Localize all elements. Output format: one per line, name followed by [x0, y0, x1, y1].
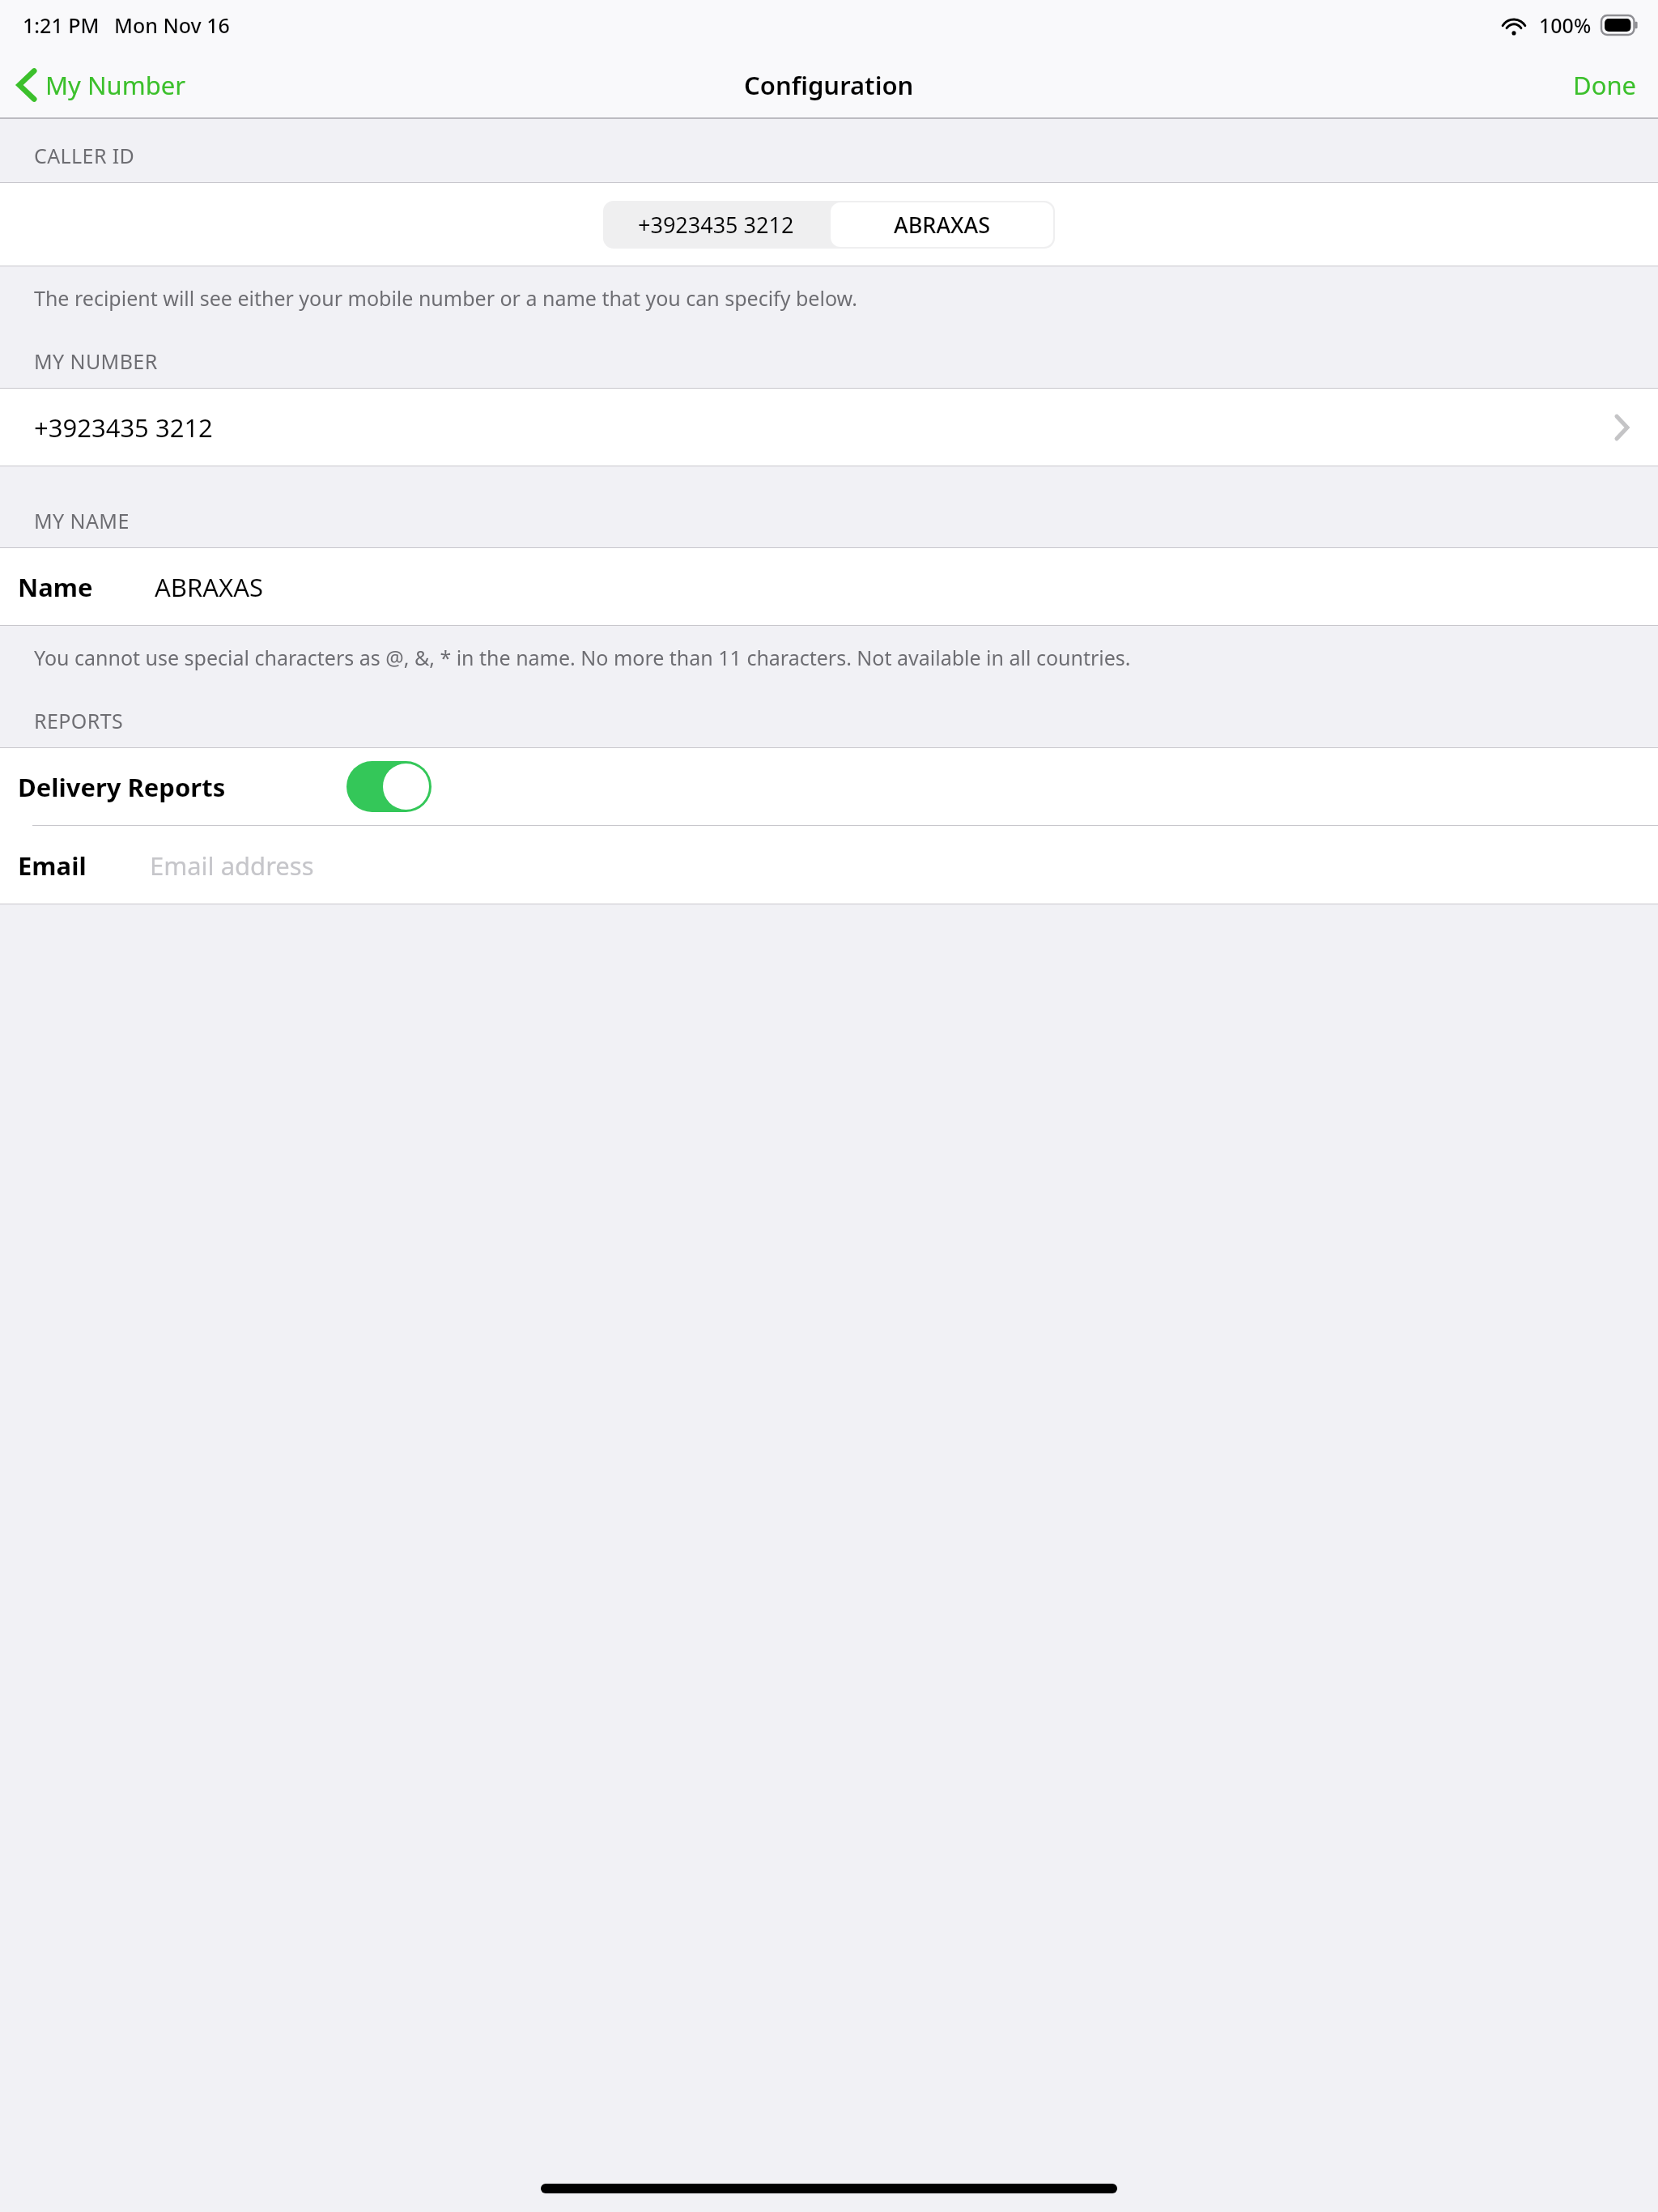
staticText: MY NUMBER: [34, 347, 158, 375]
staticText: 1:21 PM: [23, 11, 100, 39]
button[interactable]: +3923435 3212: [0, 388, 1658, 466]
staticText: Email: [18, 849, 87, 883]
staticText: ABRAXAS: [894, 210, 991, 240]
button[interactable]: ABRAXAS: [831, 202, 1053, 247]
staticText: Name: [18, 570, 93, 604]
staticText: MY NAME: [34, 507, 130, 534]
staticText: Done: [1573, 68, 1637, 102]
other: Wi-Fi: [1500, 15, 1528, 36]
button[interactable]: Delivery Reports toggle: [346, 761, 432, 812]
staticText: 100%: [1539, 11, 1592, 39]
staticText: Configuration: [744, 68, 914, 102]
button[interactable]: Email: [0, 826, 1658, 904]
staticText: CALLER ID: [34, 142, 135, 169]
button[interactable]: Name: [0, 547, 1658, 626]
staticText: You cannot use special characters as @, …: [34, 644, 1131, 671]
other: Open: [1615, 415, 1629, 440]
staticText: +3923435 3212: [34, 410, 213, 445]
other: Battery 100 percent: [1601, 15, 1639, 35]
staticText: Email address: [150, 849, 314, 883]
button[interactable]: Delivery Reports: [0, 747, 1658, 826]
button[interactable]: My Number: [0, 60, 201, 110]
staticText: Delivery Reports: [18, 770, 226, 804]
staticText: My Number: [45, 68, 186, 102]
staticText: REPORTS: [34, 707, 124, 734]
button[interactable]: Done: [1552, 58, 1658, 112]
staticText: Mon Nov 16: [114, 11, 230, 39]
button[interactable]: +3923435 3212: [603, 201, 829, 249]
staticText: The recipient will see either your mobil…: [34, 284, 857, 312]
staticText: +3923435 3212: [638, 210, 794, 240]
staticText: ABRAXAS: [155, 570, 264, 604]
